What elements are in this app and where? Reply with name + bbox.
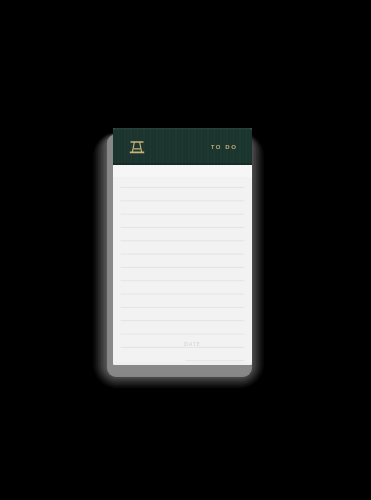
button[interactable]: Appointed brand mark [113,128,252,365]
button[interactable]: DATE [113,165,252,365]
button[interactable]: Appointed brand mark [113,128,252,165]
staticText: TO DO [211,143,238,151]
button[interactable]: TO DO [211,143,238,151]
button[interactable]: DATE [184,341,201,348]
staticText: DATE [184,341,201,348]
button[interactable]: Appointed brand mark [128,138,146,156]
